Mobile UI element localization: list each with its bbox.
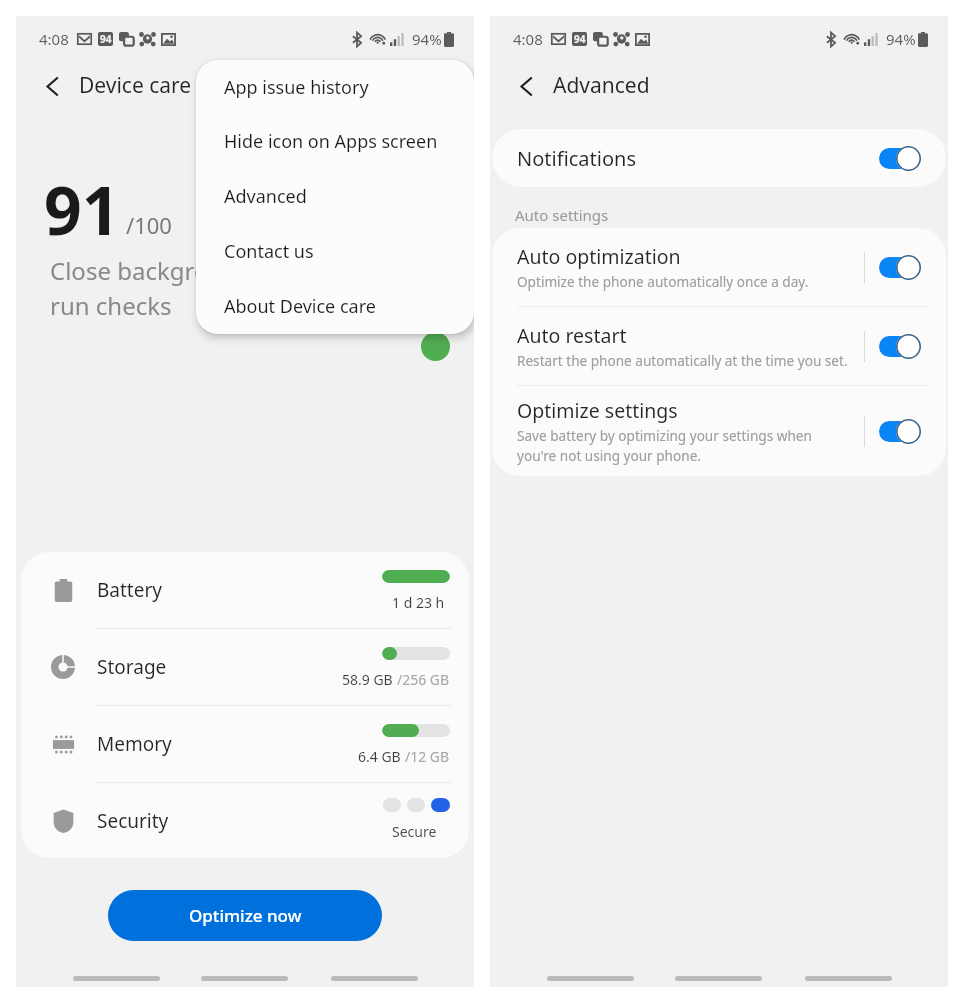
staticText: About Device care xyxy=(224,294,376,319)
staticText: Security xyxy=(97,808,169,834)
button[interactable]: Recents xyxy=(547,976,634,981)
staticText: /100 xyxy=(126,210,172,240)
staticText: 94 xyxy=(574,32,586,46)
staticText: Memory xyxy=(97,731,172,757)
button[interactable]: About Device care xyxy=(196,279,474,334)
button[interactable]: App issue history xyxy=(196,60,474,114)
staticText: Auto restart xyxy=(517,322,627,349)
button[interactable]: Battery xyxy=(21,552,469,628)
staticText: App issue history xyxy=(224,75,369,100)
staticText: 94% xyxy=(412,29,442,49)
staticText: 94% xyxy=(886,29,916,49)
button[interactable]: Optimize now xyxy=(108,890,382,941)
button[interactable]: Auto restart xyxy=(492,307,946,385)
staticText: Auto settings xyxy=(515,205,609,225)
staticText: Device care xyxy=(79,71,192,100)
staticText: Notifications xyxy=(517,145,636,172)
staticText: 1 d 23 h xyxy=(392,593,445,612)
button[interactable]: Home xyxy=(675,976,762,981)
staticText: Secure xyxy=(392,822,437,841)
staticText: Advanced xyxy=(553,71,650,100)
staticText: Contact us xyxy=(224,239,314,264)
staticText: 4:08 xyxy=(39,29,69,49)
button[interactable]: Back xyxy=(805,976,892,981)
staticText: Optimize settings xyxy=(517,397,678,424)
button[interactable]: Memory xyxy=(21,706,469,782)
button[interactable]: Hide icon on Apps screen xyxy=(196,114,474,169)
button[interactable]: Toggle switch, on xyxy=(879,418,921,444)
staticText: Optimize the phone automatically once a … xyxy=(517,272,809,291)
staticText: 94 xyxy=(100,32,112,46)
button[interactable]: Toggle switch, on xyxy=(879,254,921,280)
staticText: 58.9 GB xyxy=(342,670,397,689)
staticText: Storage xyxy=(97,654,167,680)
button[interactable]: Navigate up xyxy=(512,72,540,100)
staticText: Save battery by optimizing your settings… xyxy=(517,426,812,465)
button[interactable]: Back xyxy=(331,976,418,981)
staticText: Restart the phone automatically at the t… xyxy=(517,351,848,370)
staticText: Close background apps and run checks xyxy=(50,254,363,322)
staticText: /12 GB xyxy=(405,747,450,766)
staticText: Battery xyxy=(97,577,162,603)
staticText: Advanced xyxy=(224,184,307,209)
button[interactable]: Toggle switch, on xyxy=(879,145,921,171)
button[interactable]: Security xyxy=(21,783,469,858)
staticText: /256 GB xyxy=(397,670,450,689)
staticText: 91 xyxy=(44,164,120,254)
button[interactable]: Toggle switch, on xyxy=(879,333,921,359)
button[interactable]: Auto optimization xyxy=(492,228,946,306)
button[interactable]: Storage xyxy=(21,629,469,705)
button[interactable]: Optimize settings xyxy=(492,386,946,476)
button[interactable]: Navigate up xyxy=(38,72,66,100)
staticText: Optimize now xyxy=(189,904,302,927)
staticText: 6.4 GB xyxy=(358,747,405,766)
button[interactable]: Notifications xyxy=(492,129,946,187)
staticText: Auto optimization xyxy=(517,243,681,270)
button[interactable]: Contact us xyxy=(196,224,474,279)
button[interactable]: Home xyxy=(201,976,288,981)
staticText: 4:08 xyxy=(513,29,543,49)
button[interactable]: Advanced xyxy=(196,169,474,224)
staticText: Hide icon on Apps screen xyxy=(224,129,438,154)
button[interactable]: Recents xyxy=(73,976,160,981)
